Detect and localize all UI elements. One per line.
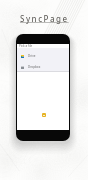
button[interactable]: Drive — [17, 54, 69, 58]
staticText: Dropbox — [28, 65, 41, 69]
button[interactable]: Dropbox — [17, 65, 69, 69]
button[interactable]: Pick a file — [17, 44, 69, 48]
staticText: Drive — [28, 54, 36, 58]
staticText: SyncPage — [20, 13, 69, 24]
button[interactable]: Add — [42, 113, 46, 117]
staticText: Pick a file — [19, 44, 33, 48]
